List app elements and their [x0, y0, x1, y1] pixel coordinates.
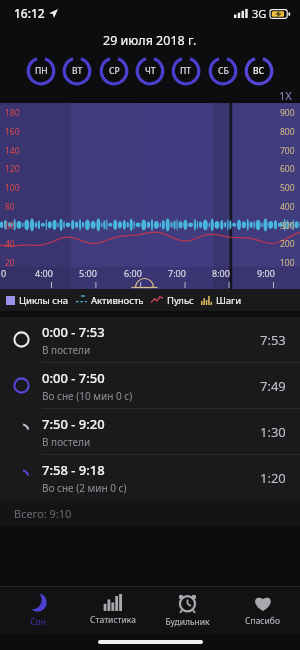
staticText: 7:53 [260, 331, 286, 349]
staticText: 1:20 [260, 469, 286, 487]
staticText: 0:00 - 7:50 [42, 369, 105, 387]
staticText: 4:00 [35, 267, 53, 279]
button[interactable]: ЧТ [135, 56, 165, 86]
staticText: 160 [5, 126, 20, 138]
staticText: Циклы сна [19, 294, 69, 307]
button[interactable]: Будильник [150, 586, 225, 634]
staticText: 40 [5, 238, 15, 250]
staticText: 7:49 [260, 377, 286, 395]
staticText: 9:00 [257, 267, 275, 279]
staticText: В постели [42, 343, 91, 357]
staticText: 16:12 [14, 5, 45, 21]
button[interactable]: СБ [208, 56, 238, 86]
staticText: 100 [280, 257, 295, 269]
button[interactable]: Статистика [75, 586, 150, 634]
staticText: ПН [35, 65, 48, 77]
staticText: Будильник [165, 616, 210, 628]
staticText: СР [109, 65, 120, 77]
staticText: 1:30 [260, 423, 286, 441]
staticText: Пульс [167, 294, 194, 307]
button[interactable]: 7:50 - 9:20 [0, 409, 300, 454]
staticText: 200 [280, 238, 295, 250]
staticText: Во сне (10 мин 0 с) [42, 389, 133, 403]
staticText: Сон [30, 616, 46, 628]
staticText: 500 [280, 182, 295, 194]
button[interactable]: Сон [0, 586, 75, 634]
staticText: 300 [280, 220, 295, 232]
button[interactable]: 0:00 - 7:50 [0, 363, 300, 408]
staticText: 100 [5, 182, 20, 194]
button[interactable]: СР [99, 56, 129, 86]
staticText: Активность [91, 294, 144, 307]
staticText: Статистика [90, 614, 136, 626]
staticText: 7:00 [168, 267, 186, 279]
staticText: В постели [42, 435, 91, 449]
button[interactable]: 0:00 - 7:53 [0, 317, 300, 362]
staticText: 600 [280, 163, 295, 175]
staticText: ЧТ [145, 65, 156, 77]
staticText: 6:00 [124, 267, 142, 279]
button[interactable]: ВТ [62, 56, 92, 86]
staticText: Всего: 9:10 [14, 506, 72, 521]
button[interactable]: Спасибо [225, 586, 300, 634]
staticText: Во сне (2 мин 0 с) [42, 481, 127, 495]
staticText: 8:00 [212, 267, 230, 279]
staticText: ВТ [72, 65, 83, 77]
staticText: 60 [5, 220, 15, 232]
staticText: 0 [1, 267, 7, 279]
staticText: 7:58 - 9:18 [42, 461, 105, 479]
staticText: 180 [5, 107, 20, 119]
staticText: 120 [5, 163, 20, 175]
staticText: 80 [5, 201, 15, 213]
staticText: ПТ [180, 65, 192, 77]
button[interactable]: ВС [244, 56, 274, 86]
button[interactable]: ПН [26, 56, 56, 86]
button[interactable]: 7:58 - 9:18 [0, 455, 300, 500]
staticText: 5:00 [79, 267, 97, 279]
staticText: Шаги [216, 294, 242, 307]
staticText: 3G [252, 6, 267, 21]
staticText: Спасибо [245, 615, 280, 627]
staticText: 0:00 - 7:53 [42, 323, 105, 341]
staticText: ВС [253, 65, 265, 77]
staticText: 140 [5, 145, 20, 157]
staticText: 800 [280, 126, 295, 138]
staticText: 29 июля 2018 г. [103, 32, 197, 49]
staticText: СБ [218, 65, 229, 77]
staticText: 7:50 - 9:20 [42, 415, 105, 433]
button[interactable]: 1X [279, 88, 292, 103]
button[interactable]: ПТ [171, 56, 201, 86]
staticText: 20 [5, 257, 15, 269]
staticText: 700 [280, 145, 295, 157]
staticText: 400 [280, 201, 295, 213]
staticText: 900 [280, 107, 295, 119]
